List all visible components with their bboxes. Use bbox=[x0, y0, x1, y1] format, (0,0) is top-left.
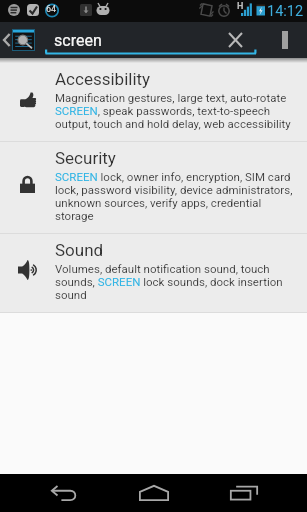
staticText: lock, password visibility, device admini… bbox=[55, 183, 293, 196]
staticText: 14:12 bbox=[267, 3, 304, 20]
staticText: storage bbox=[55, 209, 94, 222]
staticText: output, touch and hold delay, web access… bbox=[55, 117, 291, 130]
button[interactable]: Navigate up bbox=[0, 29, 35, 51]
button[interactable]: Clear query bbox=[208, 22, 263, 58]
staticText: Volumes, default notification sound, tou… bbox=[55, 262, 270, 275]
staticText: Accessibility bbox=[55, 69, 151, 89]
staticText: SCREEN, speak passwords, text-to-speech bbox=[55, 104, 271, 117]
staticText: Sound bbox=[55, 240, 104, 260]
button[interactable]: Security bbox=[0, 142, 307, 233]
button[interactable]: Recent apps bbox=[212, 474, 276, 512]
button[interactable]: Accessibility bbox=[0, 63, 307, 141]
staticText: screen bbox=[54, 31, 102, 50]
button[interactable]: Sound bbox=[0, 234, 307, 312]
staticText: sound bbox=[55, 288, 87, 301]
staticText: SCREEN lock, owner info, encryption, SIM… bbox=[55, 170, 291, 183]
button[interactable]: More options bbox=[263, 22, 307, 58]
staticText: unknown sources, verify apps, credential bbox=[55, 196, 262, 209]
staticText: H bbox=[237, 1, 244, 12]
staticText: Security bbox=[55, 148, 116, 168]
button[interactable]: Home bbox=[122, 474, 186, 512]
staticText: Magnification gestures, large text, auto… bbox=[55, 91, 287, 104]
button[interactable]: Back bbox=[32, 474, 96, 512]
staticText: 64 bbox=[46, 4, 57, 15]
staticText: sounds, SCREEN lock sounds, dock inserti… bbox=[55, 275, 283, 288]
